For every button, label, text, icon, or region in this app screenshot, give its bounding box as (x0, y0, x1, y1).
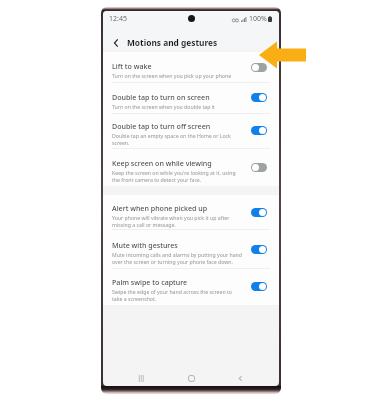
staticText: 12:45 (109, 14, 127, 24)
staticText: Your phone will vibrate when you pick it… (112, 214, 230, 228)
button[interactable]: Double tap to turn on screen (103, 82, 279, 113)
staticText: Double tap an empty space on the Home or… (112, 132, 231, 146)
staticText: 100% (249, 14, 267, 24)
button[interactable]: Back (229, 367, 251, 386)
button[interactable]: Navigate up (103, 34, 279, 51)
staticText: Keep screen on while viewing (112, 158, 212, 168)
staticText: Motions and gestures (127, 37, 218, 48)
staticText: Mute with gestures (112, 240, 178, 250)
button[interactable]: Recents (130, 367, 152, 386)
staticText: Double tap to turn on screen (112, 92, 210, 102)
staticText: Alert when phone picked up (112, 203, 208, 213)
button[interactable]: Enabled (251, 282, 267, 291)
button[interactable]: Lift to wake (103, 52, 279, 82)
staticText: Lift to wake (112, 61, 152, 71)
button[interactable]: Home (180, 367, 202, 386)
button[interactable]: Disabled (251, 163, 267, 172)
button[interactable]: Mute with gestures (103, 230, 279, 269)
button[interactable]: Alert when phone picked up (103, 195, 279, 230)
button[interactable]: Keep screen on while viewing (103, 148, 279, 186)
staticText: Keep the screen on while you're looking … (112, 169, 236, 183)
button[interactable]: Navigate up (107, 34, 125, 51)
button[interactable]: Disabled (251, 63, 267, 72)
staticText: Turn on the screen when you double tap i… (112, 103, 215, 110)
button[interactable]: Enabled (251, 208, 267, 217)
button[interactable]: Palm swipe to capture (103, 268, 279, 305)
staticText: Turn on the screen when you pick up your… (112, 72, 232, 79)
staticText: Swipe the edge of your hand across the s… (112, 288, 232, 302)
button[interactable]: Enabled (251, 126, 267, 135)
button[interactable]: Double tap to turn off screen (103, 113, 279, 148)
staticText: Double tap to turn off screen (112, 121, 211, 131)
staticText: Mute incoming calls and alarms by puttin… (112, 251, 243, 265)
button[interactable]: Enabled (251, 245, 267, 254)
button[interactable]: Enabled (251, 93, 267, 102)
staticText: Palm swipe to capture (112, 277, 188, 287)
